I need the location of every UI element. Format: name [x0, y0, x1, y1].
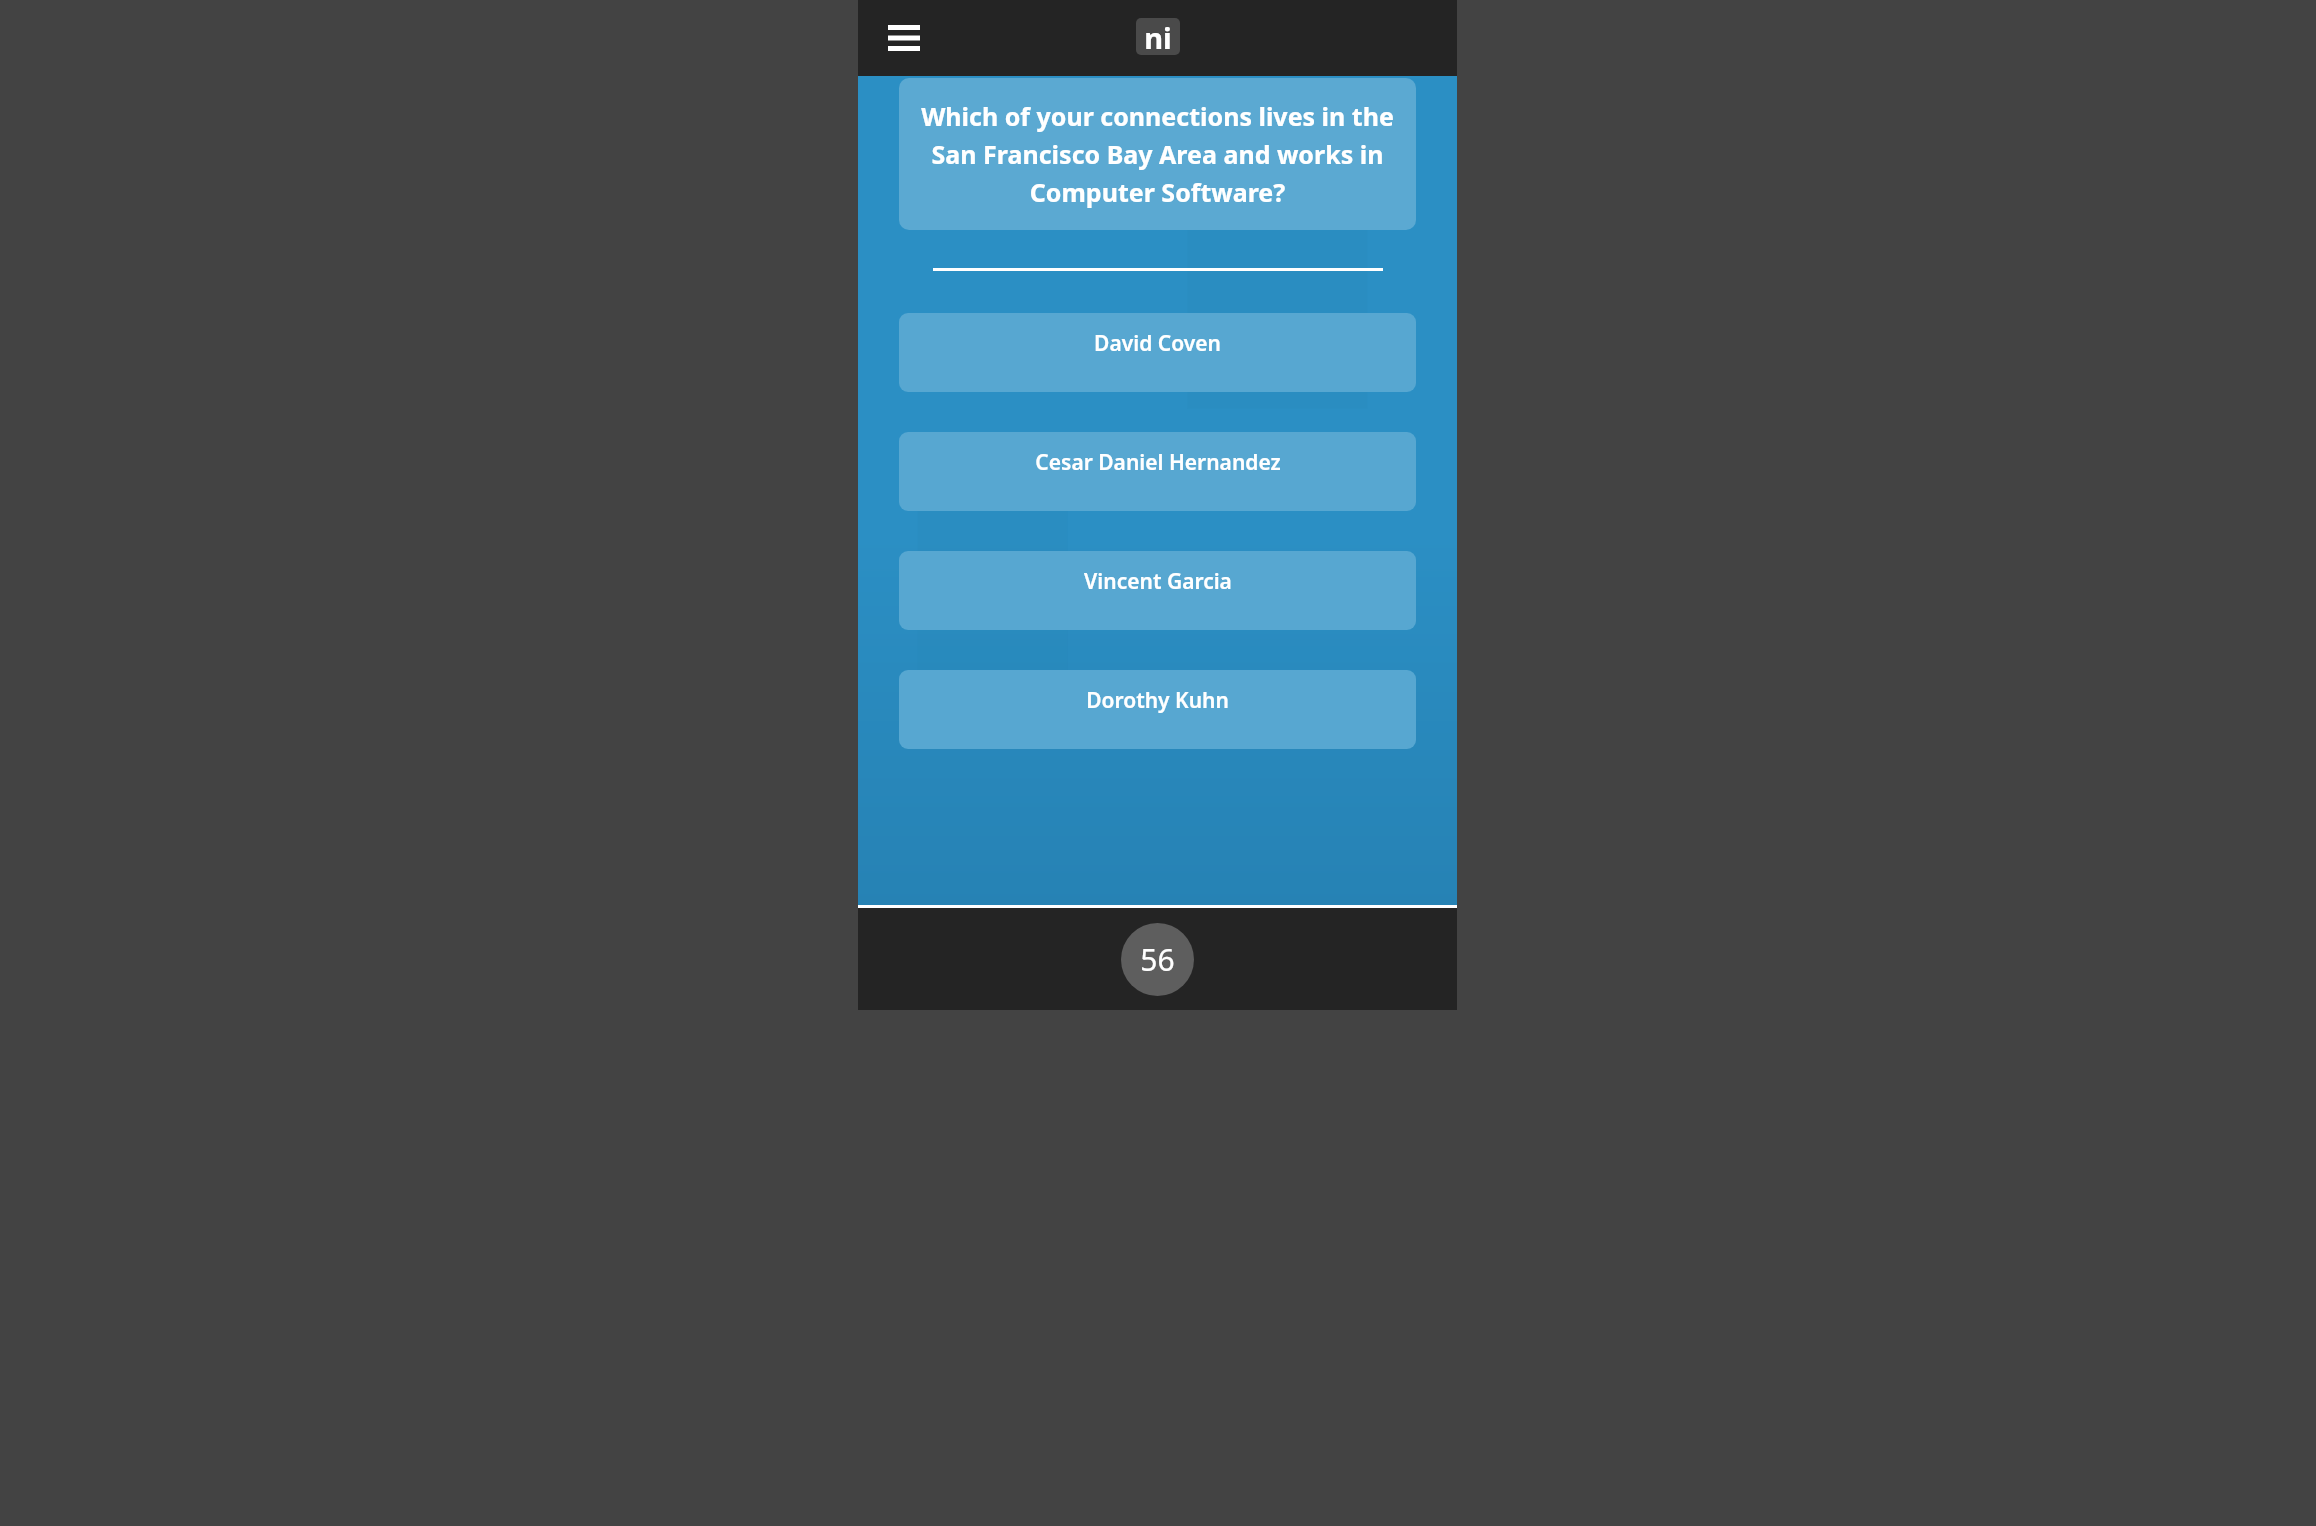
button[interactable]: Cesar Daniel Hernandez	[899, 432, 1416, 511]
staticText: Vincent Garcia	[1084, 567, 1232, 596]
button[interactable]: Vincent Garcia	[899, 551, 1416, 630]
staticText: Cesar Daniel Hernandez	[1035, 448, 1281, 477]
staticText: David Coven	[1094, 329, 1221, 358]
button[interactable]: Dorothy Kuhn	[899, 670, 1416, 749]
button[interactable]: David Coven	[899, 313, 1416, 392]
staticText: Dorothy Kuhn	[1086, 686, 1229, 715]
button[interactable]: Score 56	[1121, 923, 1194, 996]
staticText: 56	[1140, 939, 1175, 980]
button[interactable]: Home	[1136, 18, 1180, 55]
button[interactable]: Open navigation menu	[880, 14, 928, 62]
staticText: Which of your connections lives in the S…	[915, 99, 1400, 209]
staticText: ni	[1144, 18, 1172, 55]
